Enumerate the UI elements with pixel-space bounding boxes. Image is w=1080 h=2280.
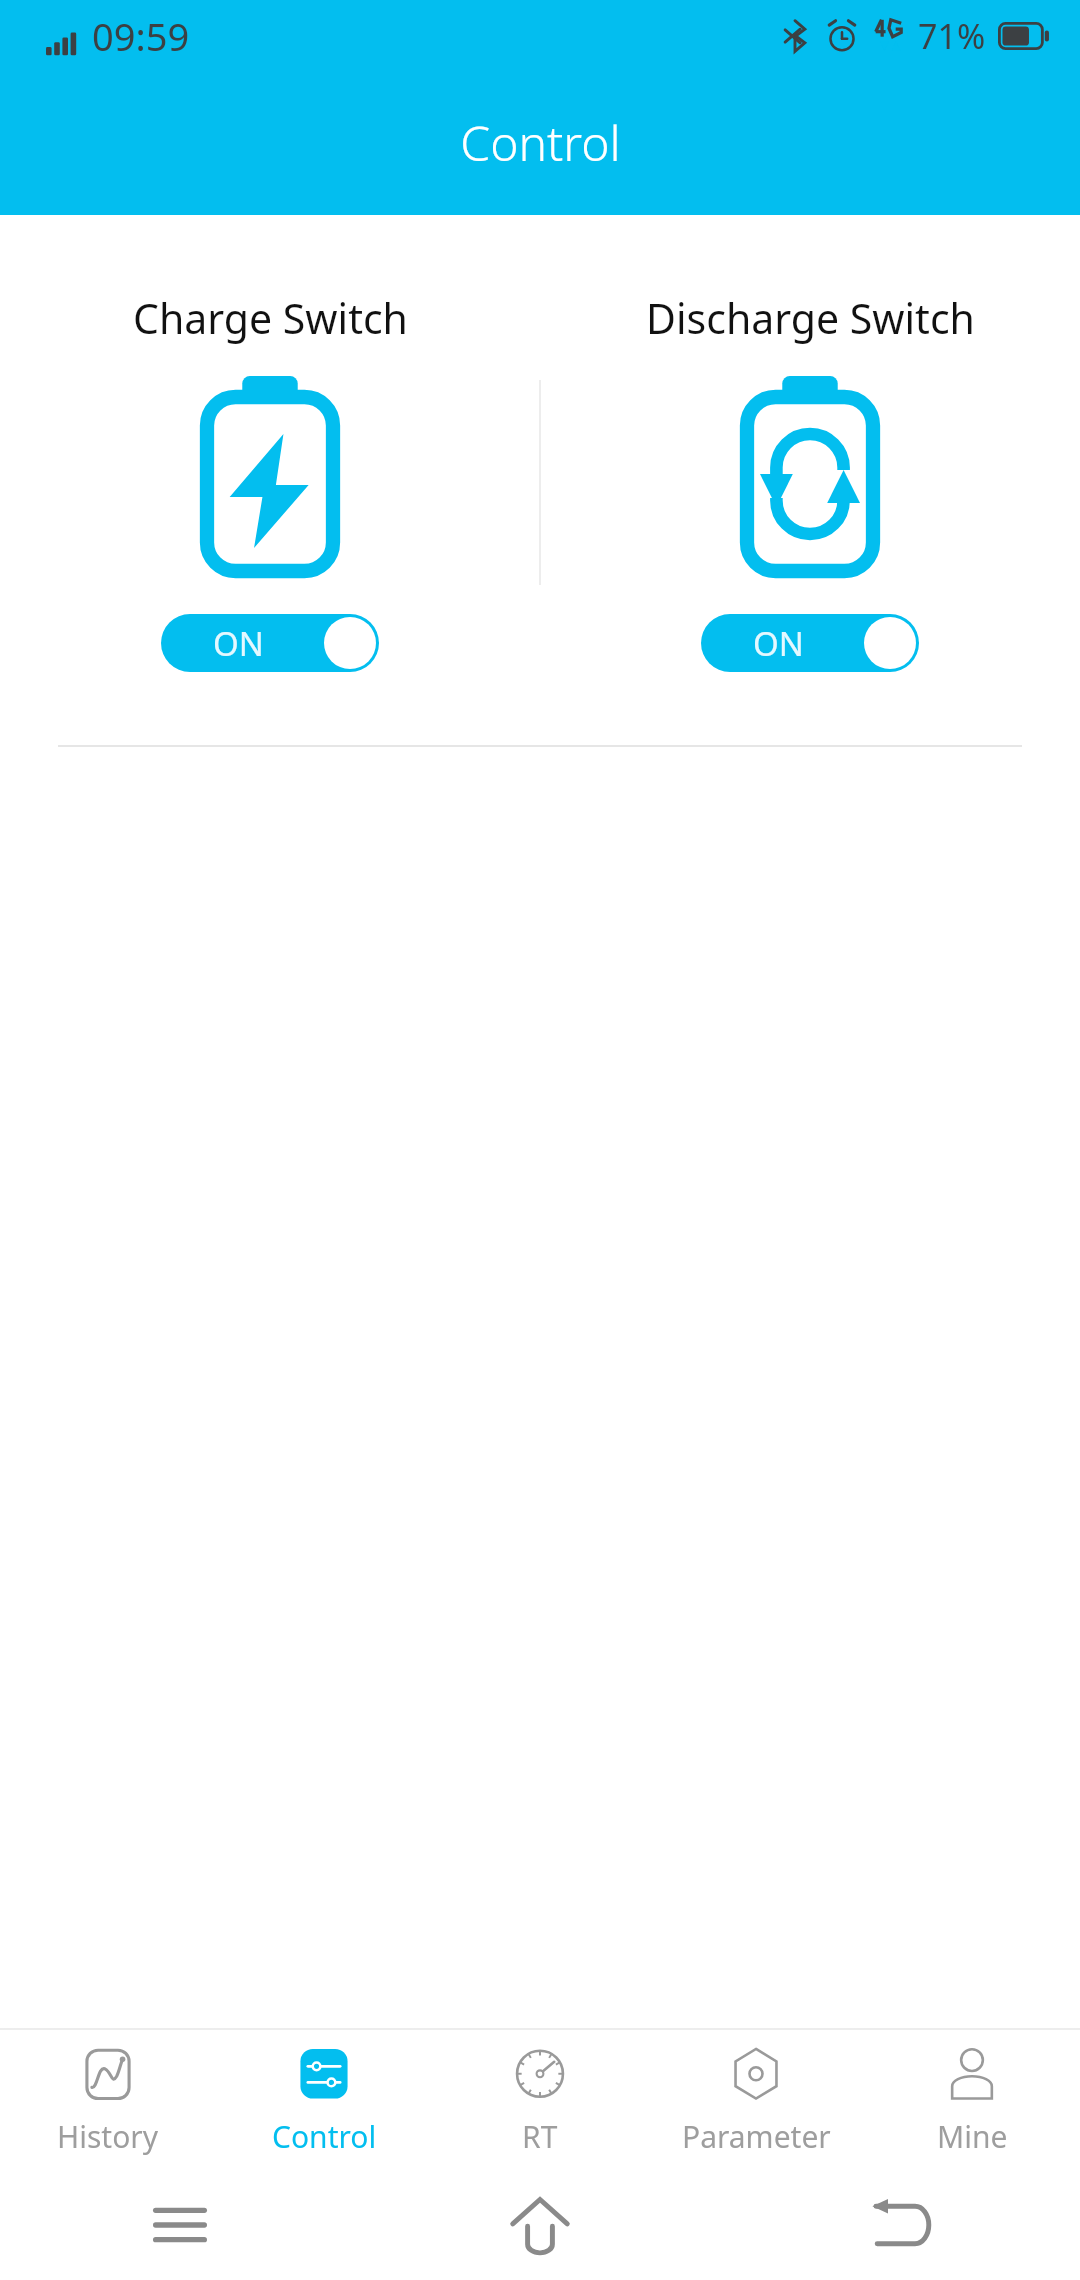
staticText: Control [272,2116,377,2157]
staticText: Parameter [682,2116,831,2157]
staticText: RT [522,2116,558,2157]
button[interactable]: Recent apps [0,2170,360,2280]
staticText: History [57,2116,159,2157]
button[interactable]: History [0,2030,216,2170]
staticText: 71% [918,13,986,59]
staticText: Mine [937,2116,1008,2157]
button[interactable]: RT [432,2030,648,2170]
button[interactable]: Discharge Switch toggle, on [701,614,919,672]
button[interactable]: Control [216,2030,432,2170]
button[interactable]: Mine [864,2030,1080,2170]
staticText: Control [460,110,621,175]
button[interactable]: Back [720,2170,1080,2280]
staticText: Charge Switch [133,290,408,346]
staticText: Discharge Switch [646,290,975,346]
button[interactable]: Home [360,2170,720,2280]
button[interactable]: Charge Switch toggle, on [161,614,379,672]
staticText: ON [753,621,804,666]
staticText: ON [213,621,264,666]
staticText: 09:59 [92,10,190,62]
button[interactable]: Parameter [648,2030,864,2170]
